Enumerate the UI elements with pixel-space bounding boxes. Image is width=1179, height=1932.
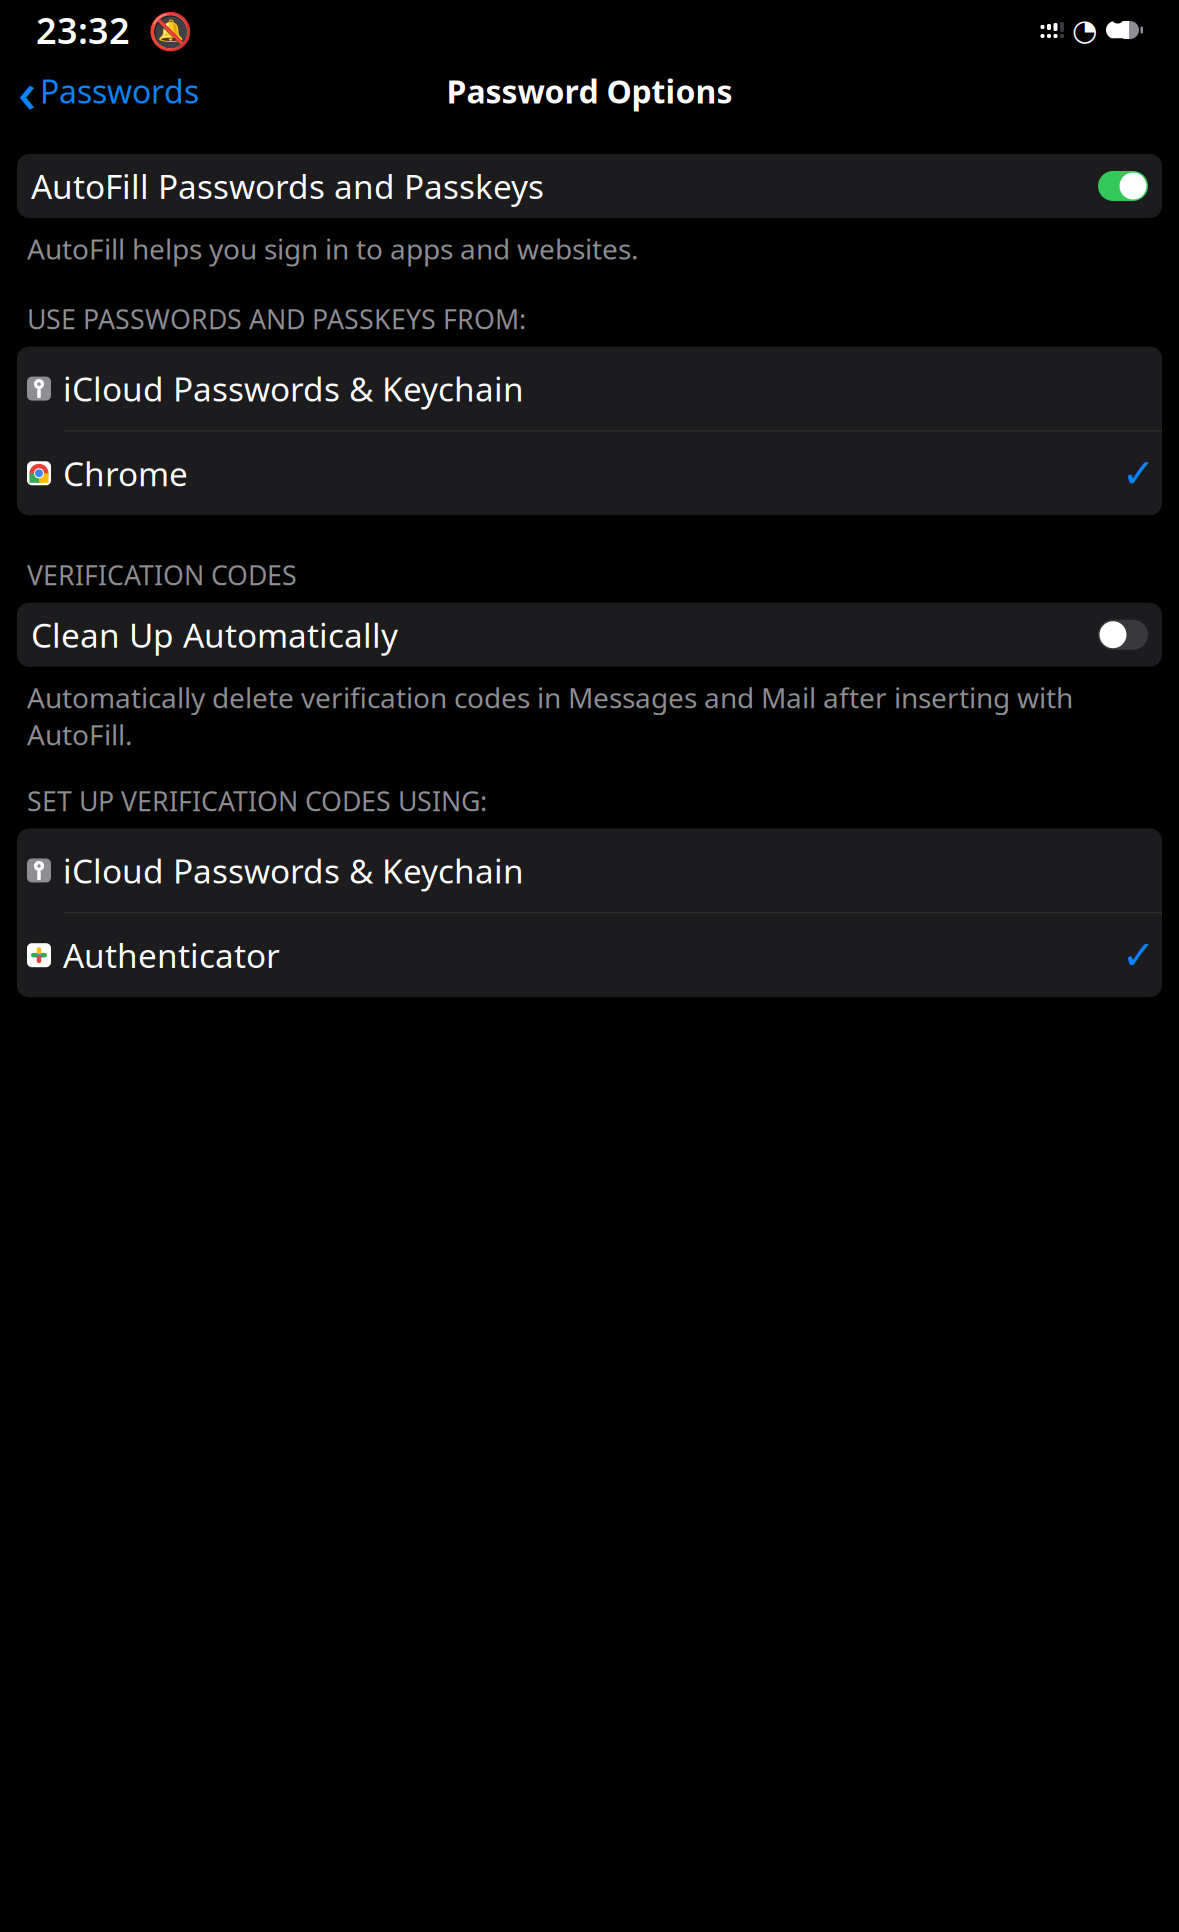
button[interactable]: Clean Up Automatically [17, 603, 1162, 667]
staticText: Chrome [63, 451, 188, 495]
button[interactable]: AutoFill Passwords and Passkeys [17, 154, 1162, 218]
button[interactable]: ‹ [8, 50, 209, 132]
staticText: ✓ [1122, 451, 1156, 496]
button[interactable]: Authenticator [17, 913, 1162, 997]
staticText: ✓ [1122, 932, 1156, 978]
staticText: ◔ [1072, 13, 1098, 47]
staticText: Authenticator [63, 933, 280, 977]
staticText: AutoFill helps you sign in to apps and w… [27, 230, 639, 267]
staticText: AutoFill Passwords and Passkeys [31, 164, 544, 208]
button[interactable]: iCloud Passwords & Keychain [17, 347, 1162, 431]
staticText: Automatically delete verification codes … [27, 679, 1073, 753]
staticText: SET UP VERIFICATION CODES USING: [27, 783, 487, 818]
staticText: Password Options [446, 70, 732, 112]
staticText: Clean Up Automatically [31, 613, 398, 657]
button[interactable]: iCloud Passwords & Keychain [17, 828, 1162, 912]
button[interactable]: Chrome [17, 431, 1162, 515]
staticText: iCloud Passwords & Keychain [63, 848, 524, 893]
staticText: iCloud Passwords & Keychain [63, 366, 524, 411]
staticText: VERIFICATION CODES [27, 557, 297, 593]
staticText: Passwords [40, 70, 199, 112]
staticText: 67 [1110, 0, 1124, 62]
staticText: ‹ [18, 54, 36, 128]
staticText: 23:32 🔕 [36, 6, 193, 54]
staticText: USE PASSWORDS AND PASSKEYS FROM: [27, 301, 526, 337]
